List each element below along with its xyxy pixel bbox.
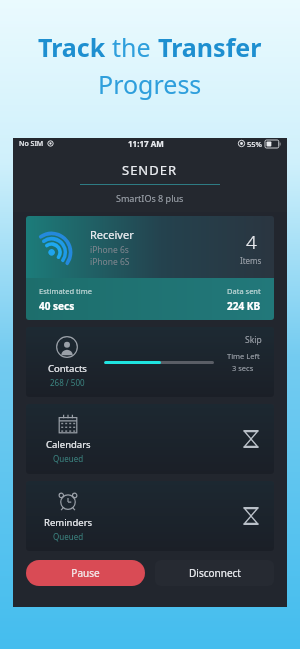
button[interactable]: Pause	[26, 560, 145, 586]
staticText: Queued	[53, 453, 84, 464]
staticText: the	[112, 30, 158, 64]
button[interactable]: Receiver	[26, 216, 274, 320]
staticText: Pause	[71, 566, 100, 580]
staticText: Data sent	[227, 286, 261, 296]
button[interactable]: Reminders	[26, 481, 274, 551]
staticText: 268 / 500	[50, 377, 85, 388]
staticText: Receiver	[90, 227, 134, 242]
staticText: 55%	[247, 139, 262, 149]
staticText: SmartIOs 8 plus	[116, 192, 184, 204]
staticText: Queued	[53, 531, 84, 542]
button[interactable]: Skip	[243, 332, 264, 348]
other: Queued	[242, 430, 260, 448]
staticText: Skip	[245, 334, 262, 346]
staticText: Disconnect	[189, 566, 241, 580]
staticText: Estimated time	[39, 286, 93, 296]
staticText: iPhone 6S	[90, 256, 130, 268]
staticText: Transfer	[158, 30, 262, 64]
staticText: No SIM	[19, 139, 44, 149]
staticText: 11:17 AM	[128, 138, 164, 149]
other: Queued	[242, 507, 260, 525]
button[interactable]: Calendars	[26, 404, 274, 474]
staticText: 3 secs	[232, 363, 254, 373]
staticText: SENDER	[122, 161, 178, 179]
staticText: 40 secs	[39, 299, 75, 313]
staticText: Time Left	[227, 351, 260, 361]
staticText: Progress	[98, 67, 202, 101]
staticText: Calendars	[46, 438, 91, 451]
staticText: Reminders	[44, 516, 93, 529]
staticText: Contacts	[48, 362, 87, 375]
staticText: 224 KB	[227, 299, 261, 313]
staticText: Track	[38, 30, 112, 64]
button[interactable]: Disconnect	[155, 560, 274, 586]
staticText: 4	[246, 229, 257, 255]
staticText: iPhone 6s	[90, 244, 129, 256]
button[interactable]: Skip	[26, 327, 274, 397]
staticText: Items	[240, 255, 262, 266]
